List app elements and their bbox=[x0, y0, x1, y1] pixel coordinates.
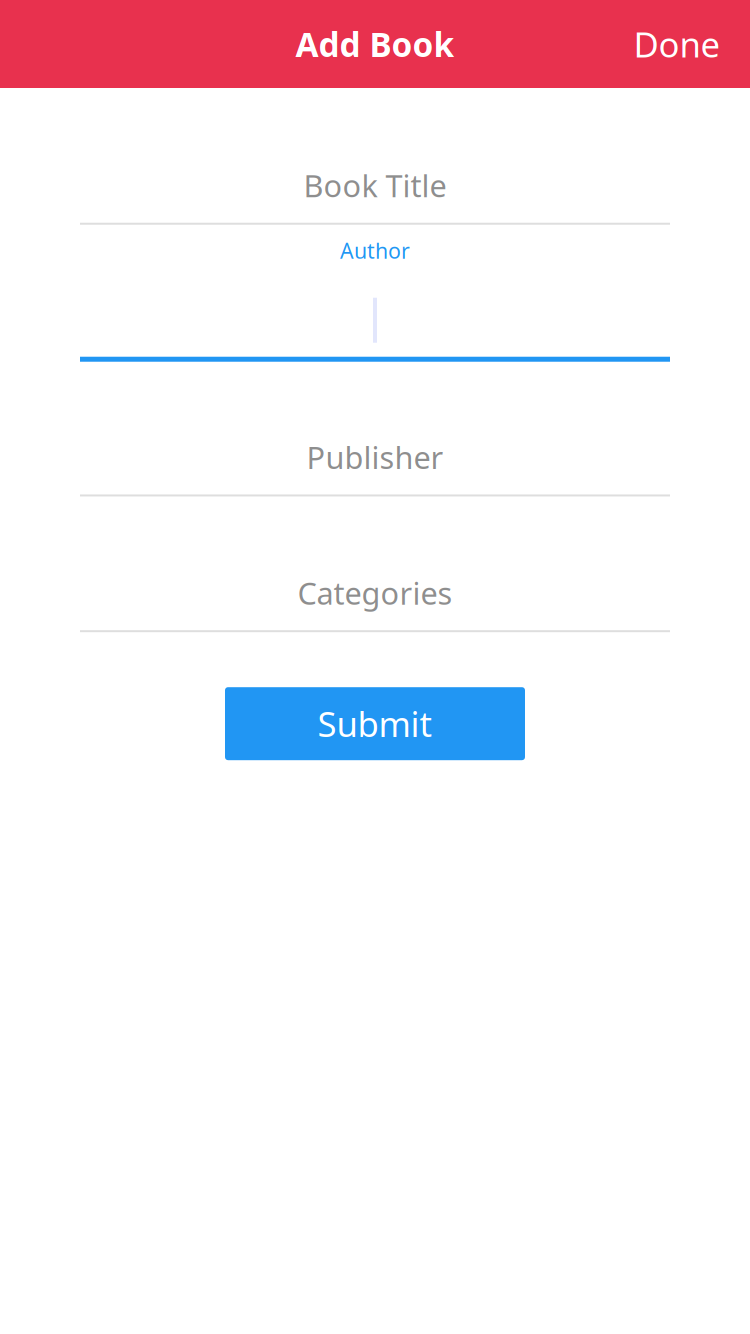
staticText: Add Book bbox=[295, 22, 454, 66]
staticText: Submit bbox=[317, 701, 432, 747]
button[interactable]: Book Title bbox=[0, 88, 750, 225]
button[interactable]: Author bbox=[0, 225, 750, 362]
staticText: Categories bbox=[297, 572, 452, 613]
staticText: Publisher bbox=[306, 437, 443, 477]
button[interactable]: Submit bbox=[225, 687, 525, 760]
button[interactable]: Publisher bbox=[0, 362, 750, 496]
button[interactable]: Done bbox=[622, 0, 732, 88]
staticText: Done bbox=[633, 21, 720, 67]
staticText: Book Title bbox=[303, 165, 446, 206]
button[interactable]: Categories bbox=[0, 496, 750, 632]
staticText: Author bbox=[340, 236, 410, 265]
